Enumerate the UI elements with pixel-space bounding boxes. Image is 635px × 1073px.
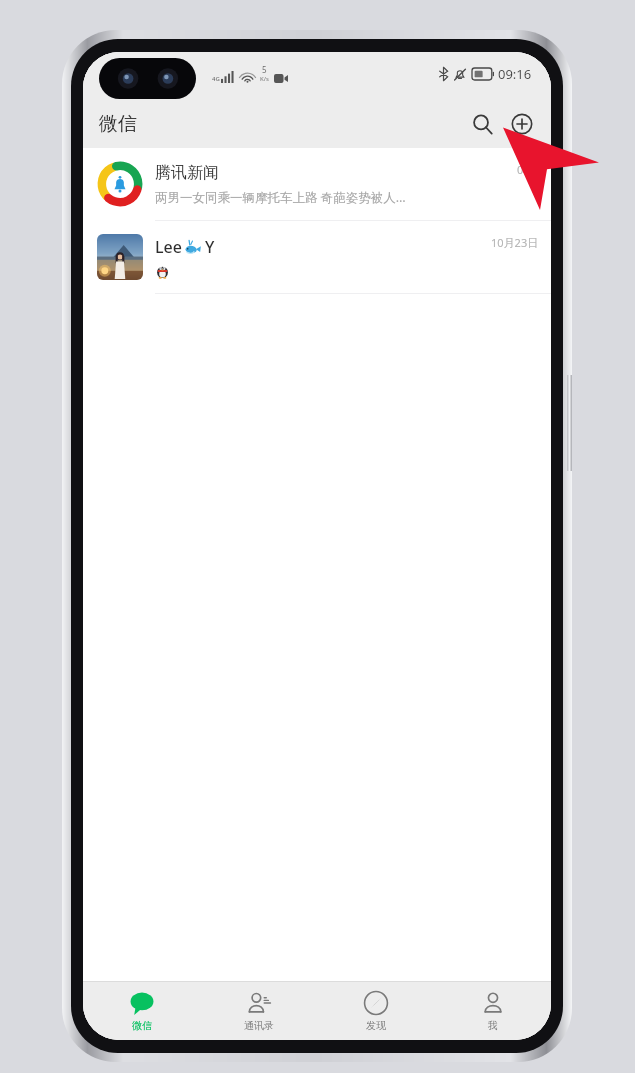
staticText: K/s <box>260 75 269 83</box>
staticText: 通讯录 <box>244 1019 274 1032</box>
button[interactable]: 我 <box>434 982 551 1040</box>
staticText: Y <box>205 236 215 258</box>
staticText: 我 <box>488 1019 498 1032</box>
staticText: Lee <box>155 236 182 258</box>
staticText: 微信 <box>132 1019 152 1032</box>
staticText: 4G <box>212 75 220 83</box>
button[interactable]: 通讯录 <box>200 982 317 1040</box>
staticText: 发现 <box>366 1019 386 1032</box>
button[interactable]: Lee <box>83 221 551 293</box>
staticText: 09:16 <box>498 65 532 83</box>
button[interactable]: 腾讯新闻 <box>83 148 551 220</box>
button[interactable]: 微信 <box>83 982 200 1040</box>
staticText: 两男一女同乘一辆摩托车上路 奇葩姿势被人… <box>155 189 406 206</box>
staticText: 10月23日 <box>491 235 539 250</box>
staticText: 08:3 <box>517 162 539 177</box>
button[interactable]: 发现 <box>317 982 434 1040</box>
button[interactable]: Search <box>462 104 502 144</box>
staticText: 腾讯新闻 <box>155 163 219 183</box>
staticText: 5 <box>262 64 267 75</box>
button[interactable]: Add <box>502 104 542 144</box>
staticText: 微信 <box>99 112 137 136</box>
